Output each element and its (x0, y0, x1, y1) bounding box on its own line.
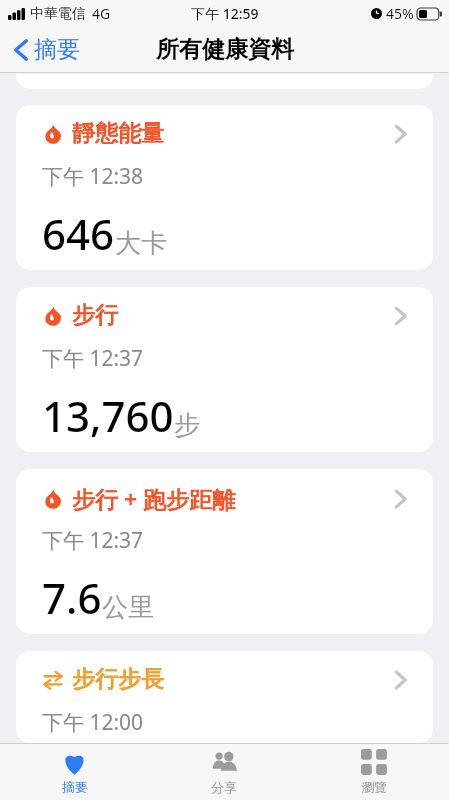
button[interactable]: 靜態能量 (16, 105, 433, 270)
staticText: 靜態能量 (72, 119, 164, 148)
staticText: 4G (92, 4, 111, 23)
staticText: 步行 (72, 301, 118, 330)
staticText: 646 (42, 205, 115, 262)
staticText: 步行 + 跑步距離 (72, 483, 236, 514)
staticText: 下午 12:59 (191, 4, 259, 23)
button[interactable]: 步行 (16, 287, 433, 452)
button[interactable]: 摘要 (10, 31, 84, 68)
staticText: 45% (386, 4, 414, 23)
staticText: 大卡 (115, 227, 167, 260)
button[interactable]: 步行 + 跑步距離 (16, 469, 433, 634)
staticText: 下午 12:37 (42, 344, 144, 373)
other: 摘要 (61, 749, 88, 776)
button[interactable]: 分享 (149, 743, 299, 800)
staticText: 下午 12:37 (42, 526, 144, 555)
staticText: 摘要 (34, 35, 80, 64)
other: 分享 (211, 749, 238, 776)
staticText: 7.6 (42, 569, 102, 626)
staticText: 公里 (102, 591, 154, 624)
staticText: 分享 (211, 779, 237, 795)
staticText: 摘要 (62, 779, 88, 795)
other: 瀏覽 (361, 749, 388, 776)
staticText: 中華電信 (30, 5, 86, 23)
staticText: 下午 12:00 (42, 708, 144, 737)
staticText: 步行步長 (72, 665, 164, 694)
staticText: 步 (174, 409, 200, 442)
staticText: 13,760 (42, 387, 174, 444)
button[interactable]: 摘要 (0, 743, 149, 800)
button[interactable]: 瀏覽 (299, 743, 449, 800)
staticText: 瀏覽 (361, 779, 387, 795)
staticText: 下午 12:38 (42, 162, 144, 191)
button[interactable]: 步行步長 (16, 651, 433, 743)
staticText: 所有健康資料 (156, 35, 294, 64)
